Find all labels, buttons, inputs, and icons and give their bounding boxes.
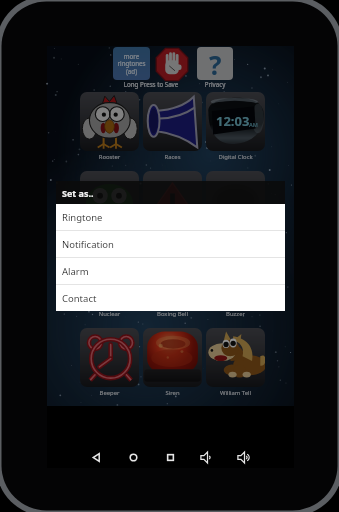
button[interactable]: Recent apps [154,441,186,473]
button[interactable]: Long Press to Save [155,47,189,82]
button[interactable]: ? [197,47,233,80]
button[interactable]: 12:03 [206,92,265,165]
button[interactable]: Home [117,441,149,473]
button[interactable]: Boxing Bell [143,249,202,322]
button[interactable]: Volume up [228,441,260,473]
staticText: Ringtone [62,211,103,224]
staticText: Buzzer [206,310,265,318]
button[interactable]: Alarm [56,258,285,284]
button[interactable]: Rooster [80,92,139,165]
staticText: ? [209,47,222,80]
button[interactable]: Races [143,92,202,165]
staticText: Siren [143,389,202,397]
staticText: more ringtones (ad) [113,52,150,76]
staticText: Digital Clock [206,153,265,161]
button[interactable]: Notification [56,231,285,257]
staticText: Nuclear [80,310,139,318]
staticText: Set as.. [62,187,94,199]
staticText: Contact [62,292,97,305]
button[interactable]: Buzzer [206,249,265,322]
button[interactable]: Beeper [80,328,139,401]
button[interactable]: Old Phone [206,171,265,244]
staticText: William Tell [206,389,265,397]
staticText: Alarm [62,265,89,278]
staticText: Long Press to Save [110,80,192,88]
staticText: Rooster [80,153,139,161]
button[interactable]: Siren [143,328,202,401]
button[interactable]: Contact [56,285,285,311]
staticText: Notification [62,238,114,251]
button[interactable]: Danger [143,171,202,244]
button[interactable]: Back [80,441,112,473]
button[interactable]: Chicken [80,171,139,244]
button[interactable]: Ringtone [56,204,285,230]
staticText: Races [143,153,202,161]
button[interactable]: more ringtones (ad) [113,47,150,80]
staticText: Boxing Bell [143,310,202,318]
button[interactable]: William Tell [206,328,265,401]
button[interactable]: Volume down [191,441,223,473]
button[interactable]: Nuclear [80,249,139,322]
staticText: AM [249,121,258,128]
staticText: Privacy [197,80,233,88]
staticText: Beeper [80,389,139,397]
staticText: 12:03 [216,112,250,130]
